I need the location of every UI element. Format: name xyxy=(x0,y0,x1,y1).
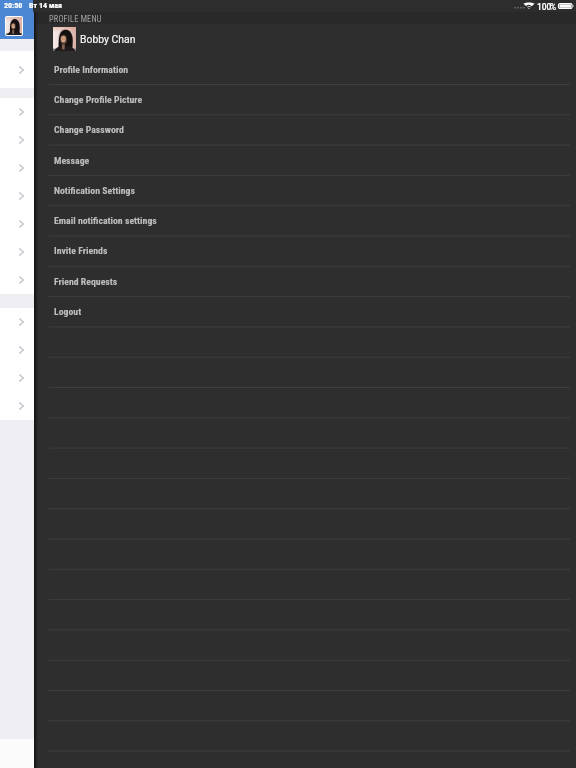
staticText: 20:50 xyxy=(4,1,23,10)
button[interactable] xyxy=(34,387,576,417)
staticText: Message xyxy=(54,155,90,166)
staticText: Вт 14 мая xyxy=(29,1,62,10)
staticText: Change Password xyxy=(54,124,124,135)
button[interactable]: Open item xyxy=(0,154,34,182)
button[interactable]: Open item xyxy=(0,392,34,420)
button[interactable]: Open item xyxy=(0,336,34,364)
button[interactable]: Open item xyxy=(0,126,34,154)
staticText: Friend Requests xyxy=(54,276,118,287)
staticText: 100 xyxy=(537,2,552,12)
button[interactable]: Invite Friends xyxy=(34,235,576,265)
button[interactable] xyxy=(34,690,576,720)
button[interactable]: Logout xyxy=(34,296,576,326)
button[interactable]: Profile Information xyxy=(34,54,576,84)
button[interactable]: Open item xyxy=(0,51,34,88)
staticText: Bobby Chan xyxy=(80,33,136,45)
button[interactable]: Change Profile Picture xyxy=(34,84,576,114)
button[interactable]: Notification Settings xyxy=(34,175,576,205)
button[interactable]: Change Password xyxy=(34,114,576,144)
button[interactable]: Open item xyxy=(0,364,34,392)
button[interactable]: Open item xyxy=(0,182,34,210)
button[interactable]: Message xyxy=(34,145,576,175)
staticText: Logout xyxy=(54,306,82,317)
button[interactable]: Open item xyxy=(0,210,34,238)
button[interactable]: Friend Requests xyxy=(34,266,576,296)
button[interactable]: Open item xyxy=(0,308,34,336)
button[interactable]: Open item xyxy=(0,98,34,126)
button[interactable] xyxy=(0,0,34,39)
staticText: Notification Settings xyxy=(54,185,135,196)
button[interactable]: Open item xyxy=(0,238,34,266)
staticText: % xyxy=(550,2,557,12)
staticText: Change Profile Picture xyxy=(54,94,143,105)
staticText: Invite Friends xyxy=(54,245,108,256)
button[interactable]: Email notification settings xyxy=(34,205,576,235)
staticText: Profile Information xyxy=(54,64,129,75)
button[interactable]: Open item xyxy=(0,266,34,294)
staticText: Email notification settings xyxy=(54,215,157,226)
staticText: PROFILE MENU xyxy=(49,14,102,24)
